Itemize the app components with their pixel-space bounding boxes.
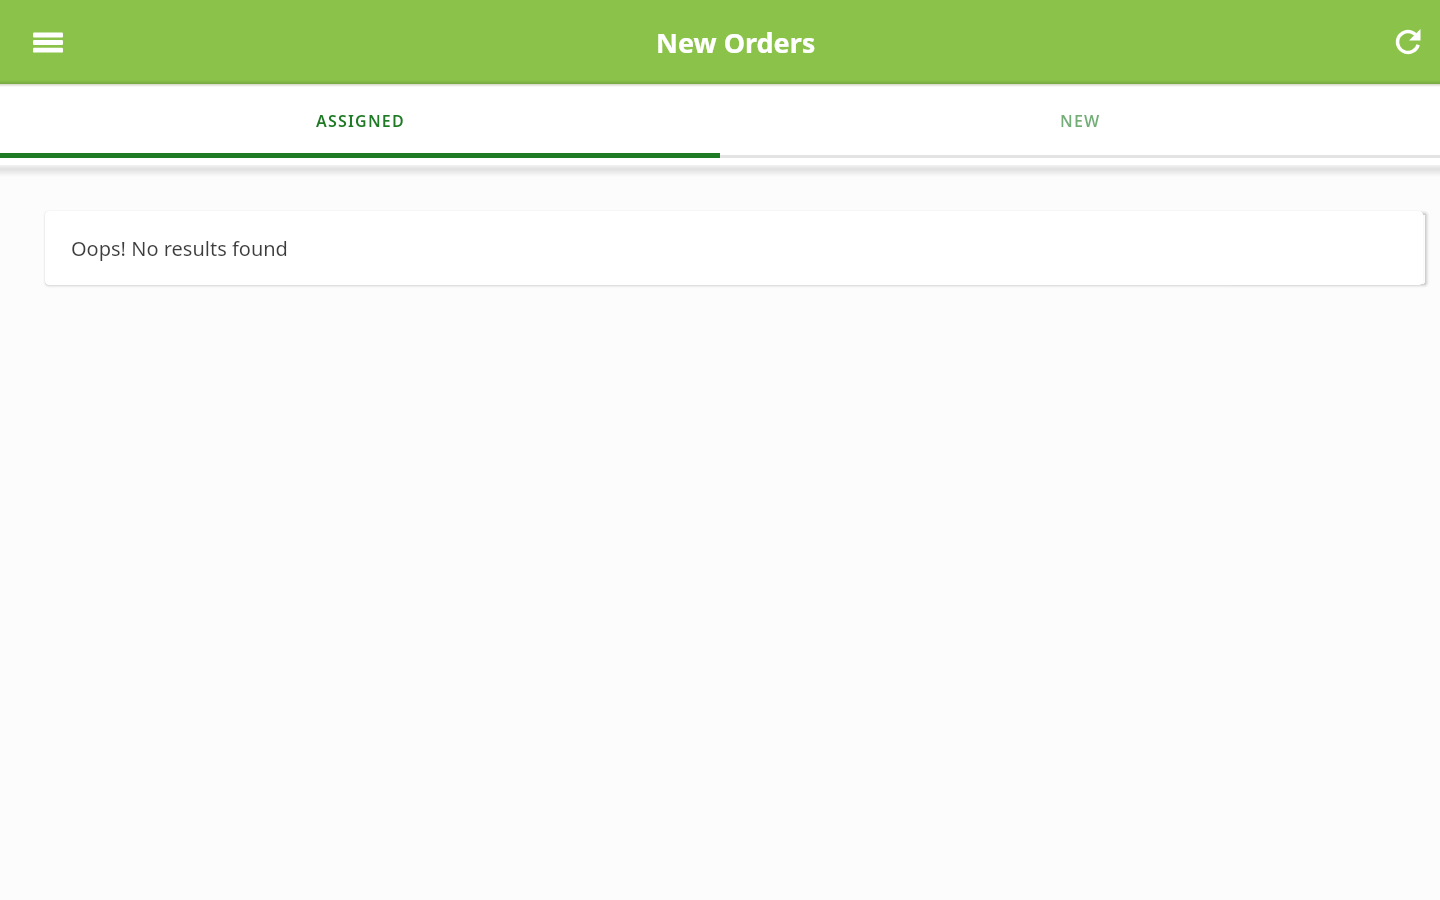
- button[interactable]: [30, 24, 67, 61]
- staticText: Oops! No results found: [71, 235, 288, 262]
- staticText: NEW: [1060, 110, 1101, 132]
- button[interactable]: [1390, 24, 1426, 60]
- staticText: ASSIGNED: [316, 110, 405, 132]
- button[interactable]: ASSIGNED: [0, 84, 720, 158]
- button[interactable]: Oops! No results found: [45, 211, 1423, 285]
- staticText: New Orders: [656, 24, 816, 61]
- button[interactable]: NEW: [720, 84, 1440, 158]
